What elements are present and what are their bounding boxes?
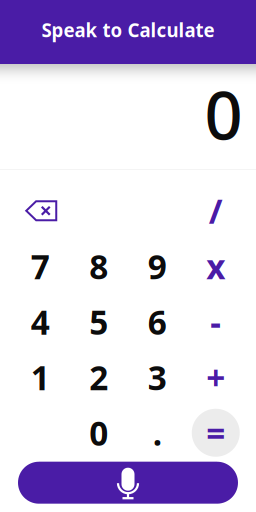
button[interactable]: x	[186, 238, 245, 294]
staticText: 0	[89, 411, 108, 455]
button[interactable]: 4	[11, 294, 69, 349]
staticText: 3	[148, 355, 167, 399]
button[interactable]: =	[186, 405, 245, 460]
button[interactable]: 9	[128, 238, 186, 294]
button[interactable]: 0	[69, 405, 128, 460]
button[interactable]: 2	[69, 349, 128, 405]
staticText: /	[209, 189, 223, 233]
staticText: +	[206, 355, 225, 399]
button[interactable]: .	[128, 405, 186, 460]
staticText: 1	[31, 355, 50, 399]
button[interactable]: 8	[69, 238, 128, 294]
button[interactable]: 5	[69, 294, 128, 349]
staticText: 7	[31, 244, 50, 288]
staticText: =	[206, 411, 225, 455]
staticText: 4	[31, 300, 50, 344]
button[interactable]: -	[186, 294, 245, 349]
staticText: .	[153, 411, 162, 455]
staticText: -	[210, 300, 221, 344]
staticText: 0	[204, 70, 242, 158]
staticText: 5	[89, 300, 108, 344]
staticText: 8	[89, 244, 108, 288]
staticText: 9	[148, 244, 167, 288]
staticText: x	[206, 244, 225, 288]
staticText: 6	[148, 300, 167, 344]
button[interactable]: 1	[11, 349, 69, 405]
button[interactable]: 7	[11, 238, 69, 294]
button[interactable]: 6	[128, 294, 186, 349]
button[interactable]: +	[186, 349, 245, 405]
staticText: 2	[89, 355, 108, 399]
button[interactable]: 3	[128, 349, 186, 405]
button[interactable]: Speak	[18, 462, 238, 504]
staticText: Speak to Calculate	[41, 18, 214, 42]
button[interactable]: Backspace	[11, 183, 69, 238]
button[interactable]: /	[186, 183, 245, 238]
